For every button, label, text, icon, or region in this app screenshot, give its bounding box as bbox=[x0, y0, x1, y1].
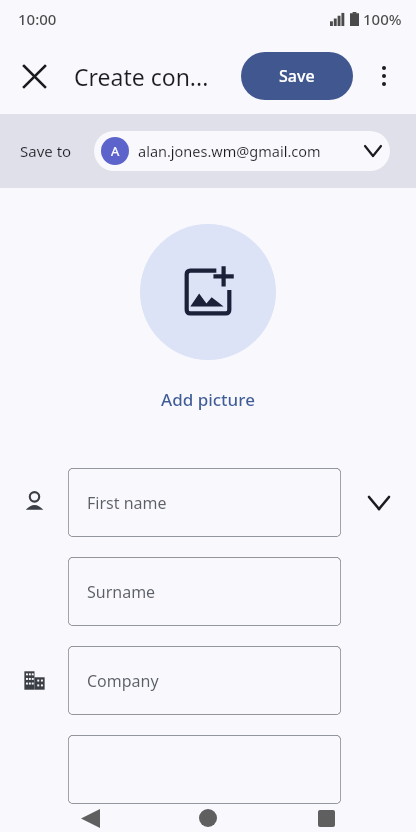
staticText: First name bbox=[87, 492, 167, 514]
staticText: 100% bbox=[363, 9, 402, 29]
staticText: Surname bbox=[87, 581, 156, 603]
button[interactable]: Close bbox=[10, 52, 58, 100]
staticText: Create con... bbox=[74, 61, 209, 92]
button[interactable]: Company bbox=[68, 646, 341, 715]
button[interactable]: More options bbox=[360, 52, 408, 100]
button[interactable]: First name bbox=[68, 468, 341, 537]
staticText: 10:00 bbox=[18, 9, 57, 29]
button[interactable]: Save bbox=[241, 52, 353, 100]
button[interactable]: Home bbox=[180, 804, 236, 832]
button[interactable] bbox=[68, 735, 341, 804]
button[interactable]: Add picture bbox=[140, 224, 276, 360]
staticText: Add picture bbox=[161, 388, 255, 411]
button[interactable]: Add picture bbox=[155, 386, 261, 413]
button[interactable]: Expand name fields bbox=[341, 468, 416, 537]
staticText: Save bbox=[279, 65, 315, 87]
staticText: A bbox=[111, 142, 120, 160]
button[interactable]: Back bbox=[62, 804, 118, 832]
button[interactable]: Recent apps bbox=[298, 804, 354, 832]
staticText: alan.jones.wm@gmail.com bbox=[138, 141, 321, 161]
button[interactable]: Surname bbox=[68, 557, 341, 626]
staticText: Save to bbox=[20, 141, 72, 161]
staticText: Company bbox=[87, 670, 159, 692]
button[interactable]: A bbox=[94, 131, 390, 171]
